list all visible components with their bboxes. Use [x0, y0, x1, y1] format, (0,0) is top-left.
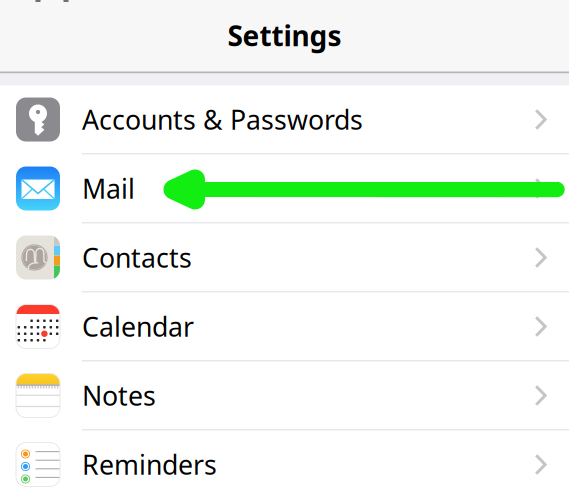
button[interactable]: Contacts — [0, 223, 569, 292]
staticText: Settings — [227, 17, 341, 54]
button[interactable]: Reminders — [0, 430, 569, 497]
staticText: Reminders — [82, 447, 217, 482]
button[interactable]: Accounts & Passwords — [0, 85, 569, 154]
staticText: Accounts & Passwords — [82, 102, 363, 137]
button[interactable]: Mail — [0, 154, 569, 223]
button[interactable]: Calendar — [0, 292, 569, 361]
staticText: Calendar — [82, 309, 194, 344]
staticText: Notes — [82, 378, 156, 413]
button[interactable]: Notes — [0, 361, 569, 430]
staticText: Mail — [82, 171, 135, 206]
staticText: Contacts — [82, 240, 192, 275]
